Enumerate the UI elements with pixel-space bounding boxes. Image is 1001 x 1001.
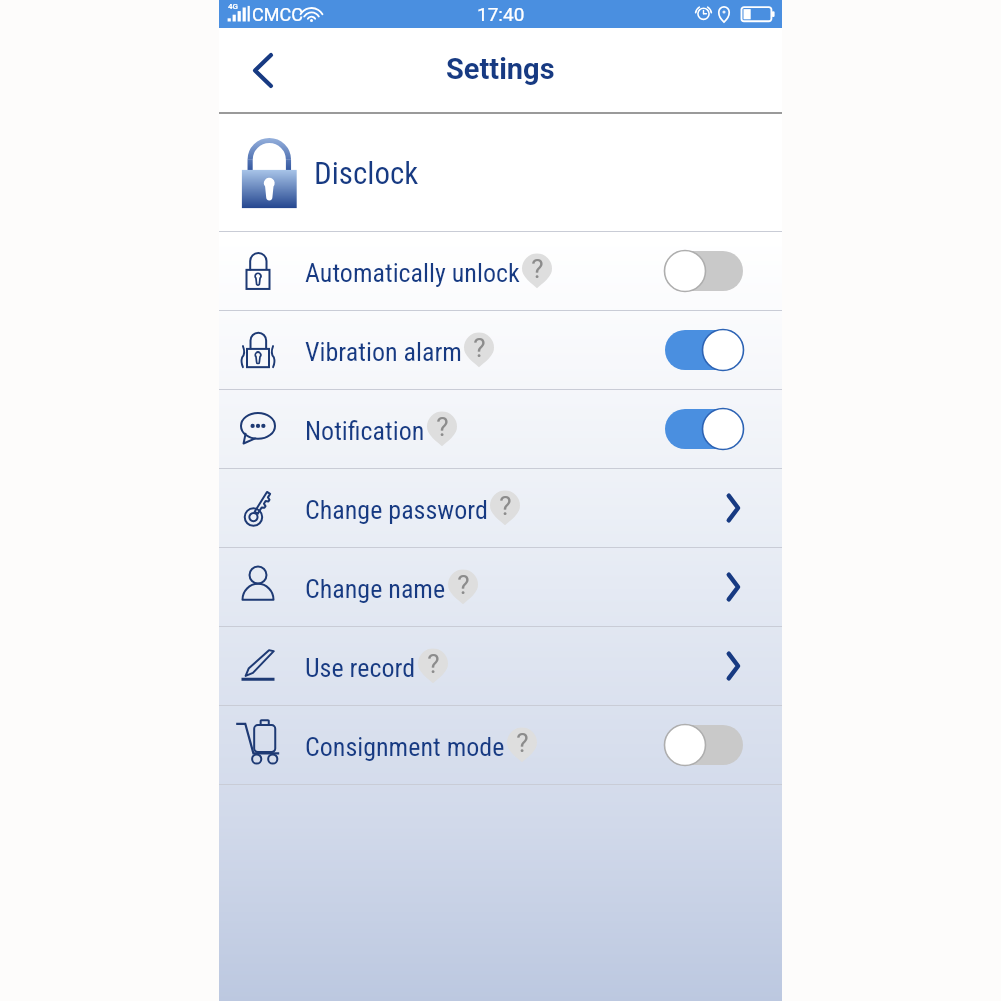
staticText: Disclock: [314, 155, 419, 191]
staticText: Change name: [305, 574, 446, 604]
staticText: ?: [457, 570, 470, 600]
button[interactable]: Switch off: [665, 251, 743, 291]
staticText: ?: [516, 728, 529, 758]
button[interactable]: Vibration alarm: [219, 311, 782, 389]
button[interactable]: Consignment mode: [219, 706, 782, 784]
staticText: Automatically unlock: [305, 258, 520, 288]
button[interactable]: Disclock: [219, 114, 782, 231]
staticText: ?: [473, 333, 486, 363]
button[interactable]: Open: [665, 635, 743, 697]
staticText: Settings: [446, 52, 555, 86]
button[interactable]: Open: [665, 556, 743, 618]
staticText: Consignment mode: [305, 732, 505, 762]
button[interactable]: Change password: [219, 469, 782, 547]
staticText: CMCC: [252, 4, 303, 25]
button[interactable]: Automatically unlock: [219, 232, 782, 310]
staticText: ?: [436, 412, 449, 442]
button[interactable]: Switch off: [665, 725, 743, 765]
button[interactable]: Change name: [219, 548, 782, 626]
button[interactable]: Notification: [219, 390, 782, 468]
button[interactable]: Switch on: [665, 330, 743, 370]
staticText: Vibration alarm: [305, 337, 462, 367]
button[interactable]: Back: [233, 40, 293, 100]
staticText: ?: [499, 491, 512, 521]
staticText: ?: [427, 649, 440, 679]
staticText: ?: [531, 254, 544, 284]
staticText: Notification: [305, 416, 425, 446]
staticText: Use record: [305, 653, 416, 683]
button[interactable]: Use record: [219, 627, 782, 705]
button[interactable]: Switch on: [665, 409, 743, 449]
staticText: 4G: [228, 2, 238, 11]
button[interactable]: Open: [665, 477, 743, 539]
staticText: 17:40: [477, 3, 525, 25]
staticText: Change password: [305, 495, 488, 525]
